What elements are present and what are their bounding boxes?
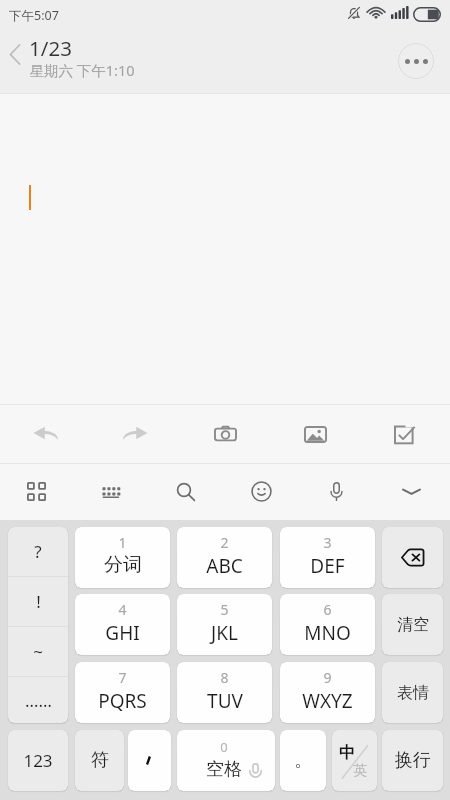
staticText: 6 [323, 600, 332, 619]
staticText: 。 [294, 749, 312, 772]
button[interactable]: Search [161, 463, 211, 520]
staticText: DEF [310, 553, 345, 579]
button[interactable]: Enter [382, 730, 443, 791]
staticText: 3 [323, 533, 332, 552]
button[interactable]: 9 WXYZ [280, 662, 375, 723]
staticText: 下午5:07 [9, 7, 59, 24]
button[interactable]: Symbols [75, 730, 124, 791]
button[interactable]: Emoji [382, 662, 443, 723]
staticText: 中 [339, 743, 355, 763]
button[interactable]: 3 DEF [280, 527, 375, 588]
staticText: 9 [323, 668, 332, 687]
button[interactable]: Checklist [380, 404, 430, 464]
staticText: 符 [91, 749, 109, 772]
button[interactable]: Space [177, 730, 275, 791]
staticText: JKL [211, 620, 238, 646]
button[interactable]: Backspace [382, 527, 443, 588]
button[interactable]: 7 PQRS [75, 662, 170, 723]
staticText: 5 [220, 600, 229, 619]
staticText: 4 [118, 600, 127, 619]
staticText: TUV [207, 688, 243, 714]
button[interactable]: Chinese/English [332, 730, 377, 791]
button[interactable]: 5 JKL [177, 594, 272, 655]
button[interactable]: Camera [200, 404, 250, 464]
staticText: MNO [304, 620, 351, 646]
staticText: GHI [105, 620, 140, 646]
button[interactable]: ! [8, 577, 68, 626]
button[interactable]: Undo [20, 404, 70, 464]
staticText: 清空 [397, 615, 429, 635]
staticText: 8 [220, 668, 229, 687]
staticText: PQRS [98, 688, 147, 714]
button[interactable]: Apps [11, 463, 61, 520]
button[interactable]: Emoji [236, 463, 286, 520]
staticText: 星期六 下午1:10 [29, 60, 135, 80]
button[interactable]: Insert image [290, 404, 340, 464]
button[interactable]: 8 TUV [177, 662, 272, 723]
button[interactable]: 123 key [8, 730, 68, 791]
staticText: 0 [220, 738, 228, 756]
staticText: 表情 [397, 683, 429, 703]
button[interactable]: More options [398, 43, 434, 79]
button[interactable]: Hide keyboard [386, 463, 436, 520]
button[interactable]: Clear [382, 594, 443, 655]
staticText: ? [34, 540, 42, 563]
button[interactable]: Voice input [311, 463, 361, 520]
button[interactable]: ~ [8, 627, 68, 676]
button[interactable]: 4 GHI [75, 594, 170, 655]
staticText: 分词 [104, 553, 142, 577]
staticText: 换行 [395, 749, 431, 772]
button[interactable]: ? [8, 527, 68, 576]
staticText: 7 [118, 668, 127, 687]
button[interactable]: Back [0, 38, 32, 70]
staticText: WXYZ [302, 688, 353, 714]
staticText: ! [36, 590, 41, 613]
button[interactable]: Redo [110, 404, 160, 464]
button[interactable]: Comma [128, 730, 171, 791]
staticText: ~ [33, 640, 43, 663]
staticText: …… [25, 689, 52, 712]
button[interactable]: 6 MNO [280, 594, 375, 655]
button[interactable]: 2 ABC [177, 527, 272, 588]
staticText: 2 [220, 533, 229, 552]
staticText: 空格 [206, 758, 242, 781]
button[interactable]: 1 分词 [75, 527, 170, 588]
staticText: 1 [118, 533, 127, 552]
staticText: 123 [23, 749, 53, 772]
staticText: 1/23 [29, 34, 72, 62]
staticText: 英 [353, 762, 367, 780]
staticText: ABC [206, 553, 243, 579]
button[interactable]: …… [8, 677, 68, 723]
button[interactable]: Keyboard layout [86, 463, 136, 520]
button[interactable]: Period [280, 730, 326, 791]
